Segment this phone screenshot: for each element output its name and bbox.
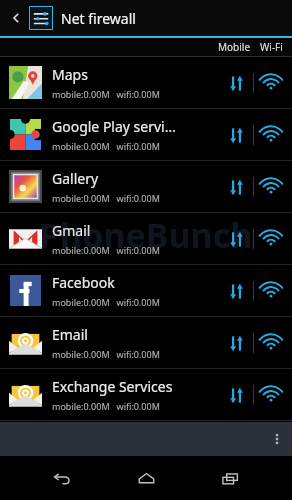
staticText: Net firewall — [61, 9, 136, 28]
staticText: mobile:0.00M wifi:0.00M — [52, 244, 160, 256]
button[interactable]: Back — [40, 456, 84, 500]
button[interactable]: Toggle mobile data — [219, 170, 253, 204]
staticText: Maps — [52, 65, 88, 84]
staticText: mobile:0.00M wifi:0.00M — [52, 140, 160, 152]
button[interactable]: Facebook — [0, 265, 292, 316]
staticText: Email — [52, 325, 88, 344]
button[interactable]: Recent apps — [208, 456, 252, 500]
button[interactable]: Toggle Wi-Fi — [254, 326, 288, 360]
staticText: Gmail — [52, 221, 91, 240]
button[interactable]: More options — [262, 424, 292, 454]
button[interactable]: Maps — [0, 57, 292, 108]
staticText: Mobile — [218, 40, 251, 54]
staticText: Wi-Fi — [260, 40, 283, 54]
button[interactable]: Toggle mobile data — [219, 326, 253, 360]
staticText: mobile:0.00M wifi:0.00M — [52, 400, 160, 412]
button[interactable]: Gallery — [0, 161, 292, 212]
button[interactable]: Gmail — [0, 213, 292, 264]
button[interactable]: Toggle mobile data — [219, 378, 253, 412]
button[interactable]: Home — [124, 456, 168, 500]
staticText: mobile:0.00M wifi:0.00M — [52, 192, 160, 204]
button[interactable]: Back — [5, 7, 27, 29]
button[interactable]: Google Play servi… — [0, 109, 292, 160]
button[interactable]: Toggle Wi-Fi — [254, 170, 288, 204]
button[interactable]: Toggle Wi-Fi — [254, 118, 288, 152]
staticText: mobile:0.00M wifi:0.00M — [52, 348, 160, 360]
staticText: mobile:0.00M wifi:0.00M — [52, 88, 160, 100]
button[interactable]: Toggle Wi-Fi — [254, 378, 288, 412]
button[interactable]: Toggle mobile data — [219, 66, 253, 100]
button[interactable]: Email — [0, 317, 292, 368]
button[interactable]: Exchange Services — [0, 369, 292, 420]
button[interactable]: Toggle mobile data — [219, 118, 253, 152]
button[interactable]: Toggle Wi-Fi — [254, 222, 288, 256]
button[interactable]: Toggle mobile data — [219, 274, 253, 308]
staticText: mobile:0.00M wifi:0.00M — [52, 296, 160, 308]
staticText: PhoneBunch — [39, 212, 253, 258]
button[interactable]: Toggle Wi-Fi — [254, 274, 288, 308]
staticText: Google Play servi… — [52, 117, 176, 136]
staticText: Exchange Services — [52, 377, 173, 396]
staticText: Facebook — [52, 273, 115, 292]
button[interactable]: Toggle Wi-Fi — [254, 66, 288, 100]
button[interactable]: Toggle mobile data — [219, 222, 253, 256]
staticText: Gallery — [52, 169, 99, 188]
